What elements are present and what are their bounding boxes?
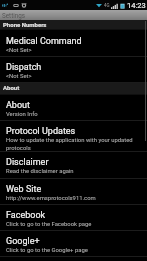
staticText: Google+ [6, 236, 40, 247]
staticText: Version Info [6, 111, 38, 118]
button[interactable]: Facebook [0, 205, 147, 231]
button[interactable]: Web Site [0, 179, 147, 205]
staticText: About [6, 100, 30, 111]
staticText: <Not Set> [6, 47, 32, 54]
staticText: Dispatch [6, 62, 42, 73]
button[interactable]: Google+ [0, 231, 147, 257]
staticText: http://www.emsprotocols911.com [6, 195, 96, 202]
button[interactable]: Medical Command [0, 30, 147, 57]
button[interactable]: Dispatch [0, 57, 147, 83]
button[interactable]: Disclaimer [0, 152, 147, 179]
staticText: Disclaimer [6, 157, 49, 168]
staticText: Read the disclaimer again [6, 168, 74, 175]
staticText: Click to go to the Google+ page [6, 247, 88, 254]
staticText: 4G [104, 3, 110, 8]
staticText: Click to go to the Facebook page [6, 221, 92, 228]
staticText: Protocol Updates [6, 126, 76, 137]
staticText: About [3, 84, 20, 91]
staticText: <Not Set> [6, 73, 32, 80]
staticText: Medical Command [6, 36, 82, 47]
button[interactable]: About [0, 95, 147, 121]
staticText: Settings [2, 12, 25, 19]
staticText: Phone Numbers [3, 21, 47, 28]
staticText: How to update the application with your … [6, 137, 143, 151]
button[interactable]: Protocol Updates [0, 121, 147, 152]
staticText: 14:23 [127, 1, 146, 10]
staticText: Facebook [6, 210, 46, 221]
staticText: Web Site [6, 184, 42, 195]
